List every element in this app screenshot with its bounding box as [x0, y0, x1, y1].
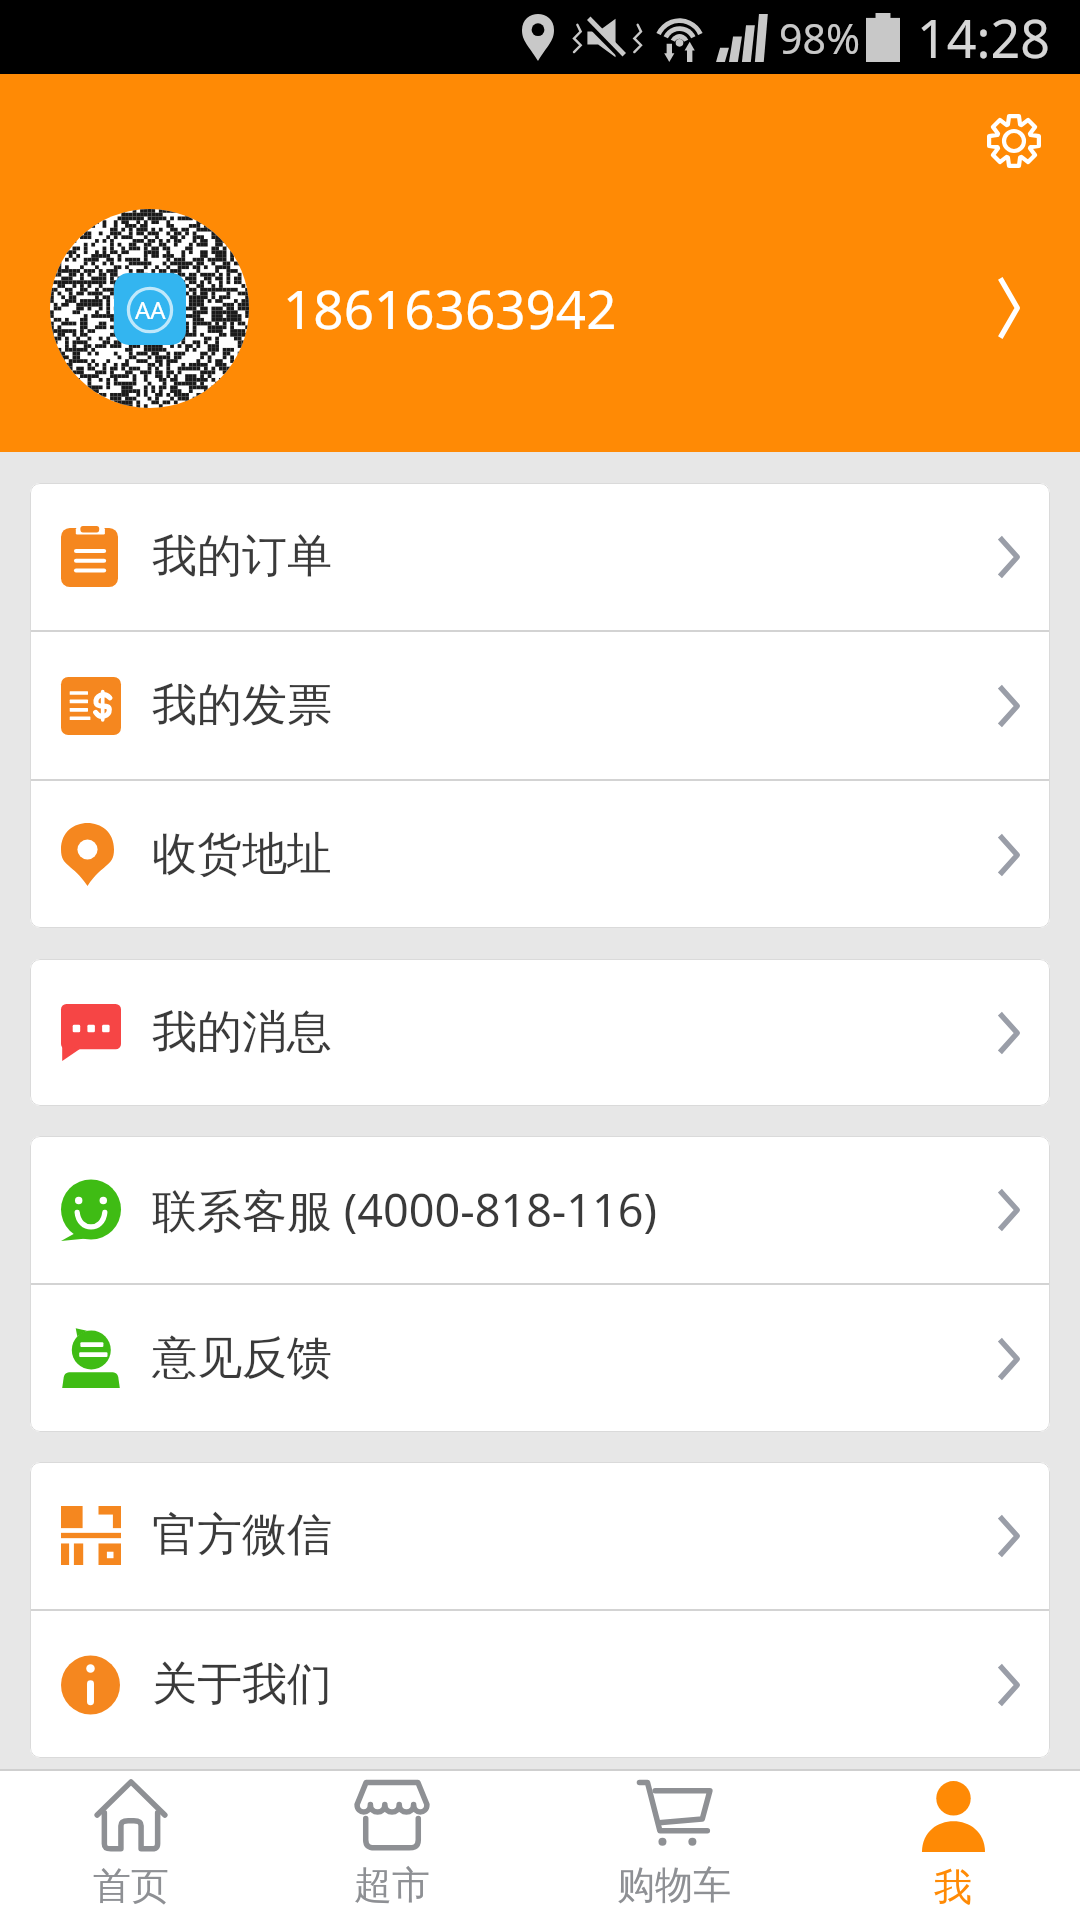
button[interactable]: 超市	[262, 1769, 522, 1920]
button[interactable]: 我的订单	[30, 483, 1050, 630]
staticText: 我的订单	[152, 528, 332, 585]
button[interactable]: 收货地址	[30, 781, 1050, 928]
button[interactable]: 首页	[0, 1769, 262, 1920]
button[interactable]: 我的发票	[30, 632, 1050, 779]
button[interactable]: 我的消息	[30, 959, 1050, 1106]
button[interactable]: 购物车	[522, 1769, 826, 1920]
staticText: 关于我们	[152, 1656, 332, 1713]
staticText: 我	[934, 1863, 972, 1911]
staticText: 超市	[354, 1861, 430, 1909]
staticText: 我的发票	[152, 677, 332, 734]
staticText: 意见反馈	[152, 1330, 332, 1387]
staticText: 官方微信	[152, 1507, 332, 1564]
staticText: 98%	[779, 10, 860, 66]
staticText: 收货地址	[152, 826, 332, 883]
button[interactable]: 联系客服 (4000-818-116)	[30, 1136, 1050, 1283]
button[interactable]: Settings	[974, 101, 1054, 181]
staticText: AA	[135, 293, 166, 326]
staticText: 14:28	[917, 2, 1050, 73]
button[interactable]: 官方微信	[30, 1462, 1050, 1609]
staticText: 18616363942	[283, 272, 617, 344]
staticText: 我的消息	[152, 1004, 332, 1061]
button[interactable]: AA	[0, 205, 1080, 411]
staticText: 购物车	[617, 1861, 731, 1909]
staticText: 首页	[93, 1862, 169, 1910]
button[interactable]: 我	[826, 1769, 1080, 1920]
button[interactable]: 关于我们	[30, 1611, 1050, 1758]
button[interactable]: 意见反馈	[30, 1285, 1050, 1432]
staticText: 联系客服 (4000-818-116)	[152, 1179, 658, 1240]
